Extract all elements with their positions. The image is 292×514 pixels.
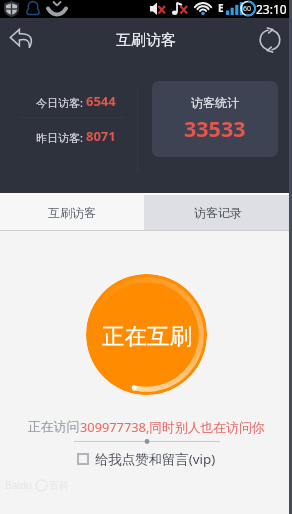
staticText: 33533 (184, 114, 246, 143)
staticText: 今日访客: (36, 95, 83, 110)
button[interactable]: 访客记录 (144, 195, 292, 230)
staticText: E (218, 1, 224, 15)
staticText: 60 (243, 4, 252, 14)
staticText: 正在访问 (28, 419, 80, 435)
staticText: 昨日访客: (36, 130, 83, 145)
staticText: 互刷访客 (116, 31, 176, 50)
staticText: 访客统计 (191, 95, 239, 110)
button[interactable]: 给我点赞和留言(vip) (71, 447, 222, 471)
staticText: 6544 (86, 92, 116, 110)
staticText: 309977738,同时别人也在访问你 (80, 418, 265, 435)
button[interactable]: Refresh (248, 18, 292, 62)
staticText: 百科 (49, 479, 69, 492)
button[interactable]: 访客统计 (152, 81, 278, 157)
staticText: Baidu (5, 478, 33, 492)
button[interactable]: Back (0, 18, 44, 62)
staticText: 访客记录 (194, 205, 242, 220)
staticText: 正在互刷 (102, 322, 192, 350)
staticText: 给我点赞和留言(vip) (95, 450, 216, 468)
button[interactable]: 正在互刷 (86, 274, 207, 395)
button[interactable]: 互刷访客 (0, 195, 144, 230)
staticText: 23:10 (256, 1, 287, 17)
staticText: 8071 (86, 127, 116, 145)
staticText: 互刷访客 (48, 205, 96, 220)
